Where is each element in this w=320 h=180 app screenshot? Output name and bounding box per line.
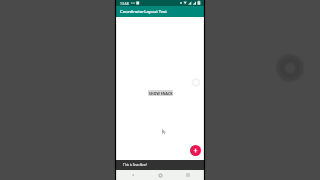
button[interactable]: Recents xyxy=(178,170,198,180)
button[interactable]: SHOW SNACK xyxy=(148,90,173,96)
staticText: SHOW SNACK xyxy=(149,91,173,96)
button[interactable]: This is Snackbar! xyxy=(115,160,205,170)
staticText: CoordinatorLayout Test xyxy=(120,9,167,15)
button[interactable]: Add xyxy=(190,145,201,156)
button[interactable]: Back xyxy=(123,170,143,180)
staticText: 13:58 xyxy=(120,1,129,6)
staticText: This is Snackbar! xyxy=(123,163,148,167)
button[interactable]: Home xyxy=(150,170,170,180)
